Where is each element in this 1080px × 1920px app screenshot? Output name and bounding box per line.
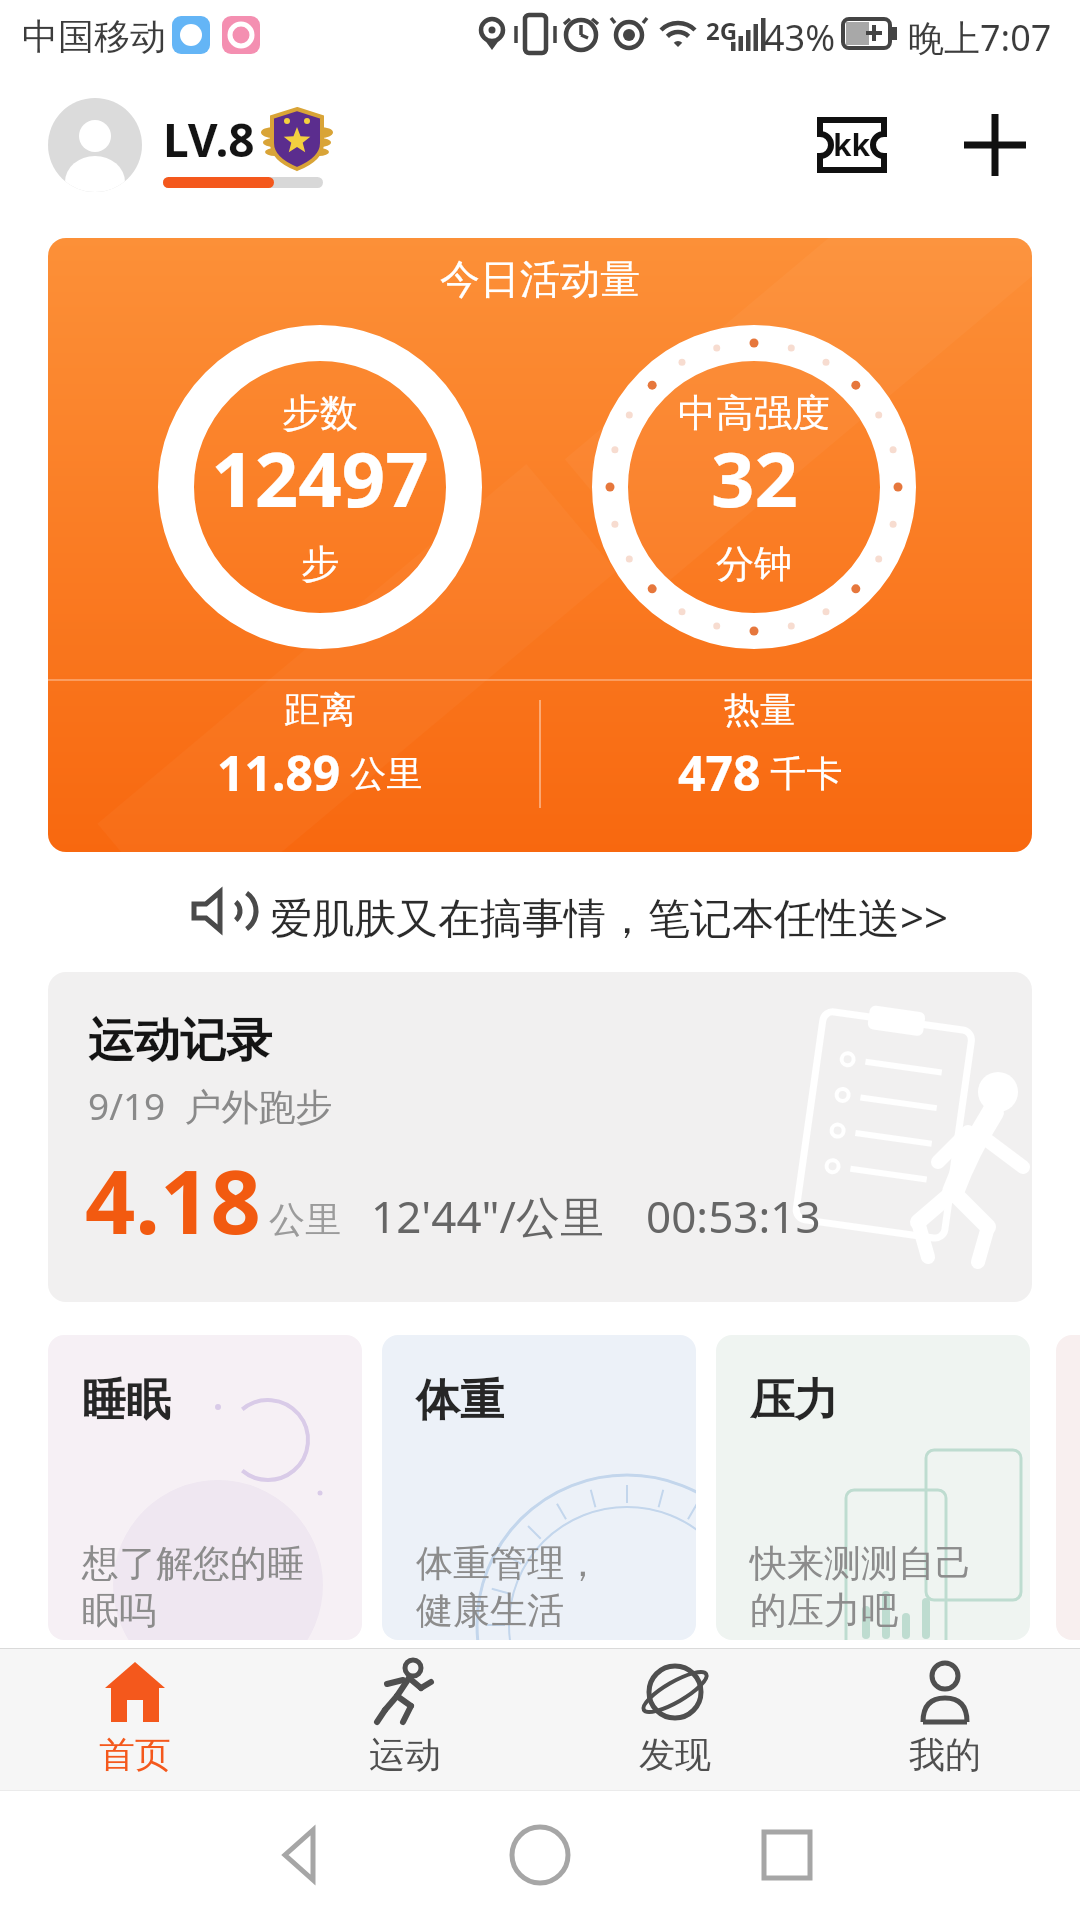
staticText: 距离: [284, 687, 356, 732]
button[interactable]: 运动记录: [48, 972, 1032, 1302]
button[interactable]: [48, 238, 1032, 852]
button[interactable]: 爱肌肤又在搞事情，笔记本任性送>>: [150, 878, 930, 948]
staticText: kk: [833, 124, 871, 165]
staticText: 分钟: [716, 540, 792, 588]
staticText: 睡眠: [82, 1373, 170, 1428]
staticText: 爱肌肤又在搞事情，笔记本任性送>>: [270, 888, 949, 945]
button[interactable]: 运动: [305, 1652, 505, 1786]
staticText: 12'44"/公里: [371, 1186, 604, 1246]
button[interactable]: 体重: [382, 1335, 696, 1640]
staticText: 12497: [211, 426, 429, 530]
button[interactable]: [262, 1815, 342, 1895]
staticText: LV.8: [163, 108, 255, 171]
button[interactable]: 我的: [845, 1652, 1045, 1786]
staticText: 11.89: [217, 740, 341, 805]
staticText: 运动记录: [88, 1012, 272, 1070]
button[interactable]: 压力: [716, 1335, 1030, 1640]
staticText: 00:53:13: [646, 1186, 821, 1246]
staticText: 体重管理， 健康生活: [416, 1540, 601, 1634]
button[interactable]: kk: [812, 112, 892, 178]
button[interactable]: [747, 1815, 827, 1895]
staticText: 压力: [750, 1373, 838, 1428]
button[interactable]: [500, 1815, 580, 1895]
staticText: 想了解您的睡 眠吗: [82, 1540, 304, 1634]
staticText: 公里: [341, 748, 423, 797]
staticText: 发现: [639, 1732, 711, 1777]
staticText: 中国移动: [22, 14, 166, 59]
button[interactable]: 首页: [35, 1652, 235, 1786]
staticText: 热量: [724, 687, 796, 732]
staticText: 步: [301, 540, 339, 588]
button[interactable]: [942, 92, 1048, 198]
staticText: 478: [678, 740, 761, 805]
staticText: 步数: [282, 389, 358, 437]
button[interactable]: 睡眠: [48, 1335, 362, 1640]
button[interactable]: 发现: [575, 1652, 775, 1786]
staticText: 快来测测自己 的压力吧: [750, 1540, 972, 1634]
staticText: 我的: [909, 1732, 981, 1777]
staticText: 2G: [706, 14, 738, 47]
staticText: 晚上7:07: [908, 13, 1052, 62]
staticText: 公里: [269, 1197, 341, 1242]
staticText: 43%: [764, 13, 836, 62]
staticText: 今日活动量: [440, 254, 640, 304]
staticText: 32: [711, 426, 798, 530]
staticText: 9/19 户外跑步: [88, 1080, 333, 1131]
staticText: 4.18: [85, 1140, 261, 1260]
staticText: 千卡: [761, 748, 843, 797]
staticText: 体重: [416, 1373, 504, 1428]
staticText: 首页: [99, 1732, 171, 1777]
staticText: 中高强度: [678, 389, 830, 437]
button[interactable]: [48, 98, 142, 192]
staticText: 运动: [369, 1732, 441, 1777]
